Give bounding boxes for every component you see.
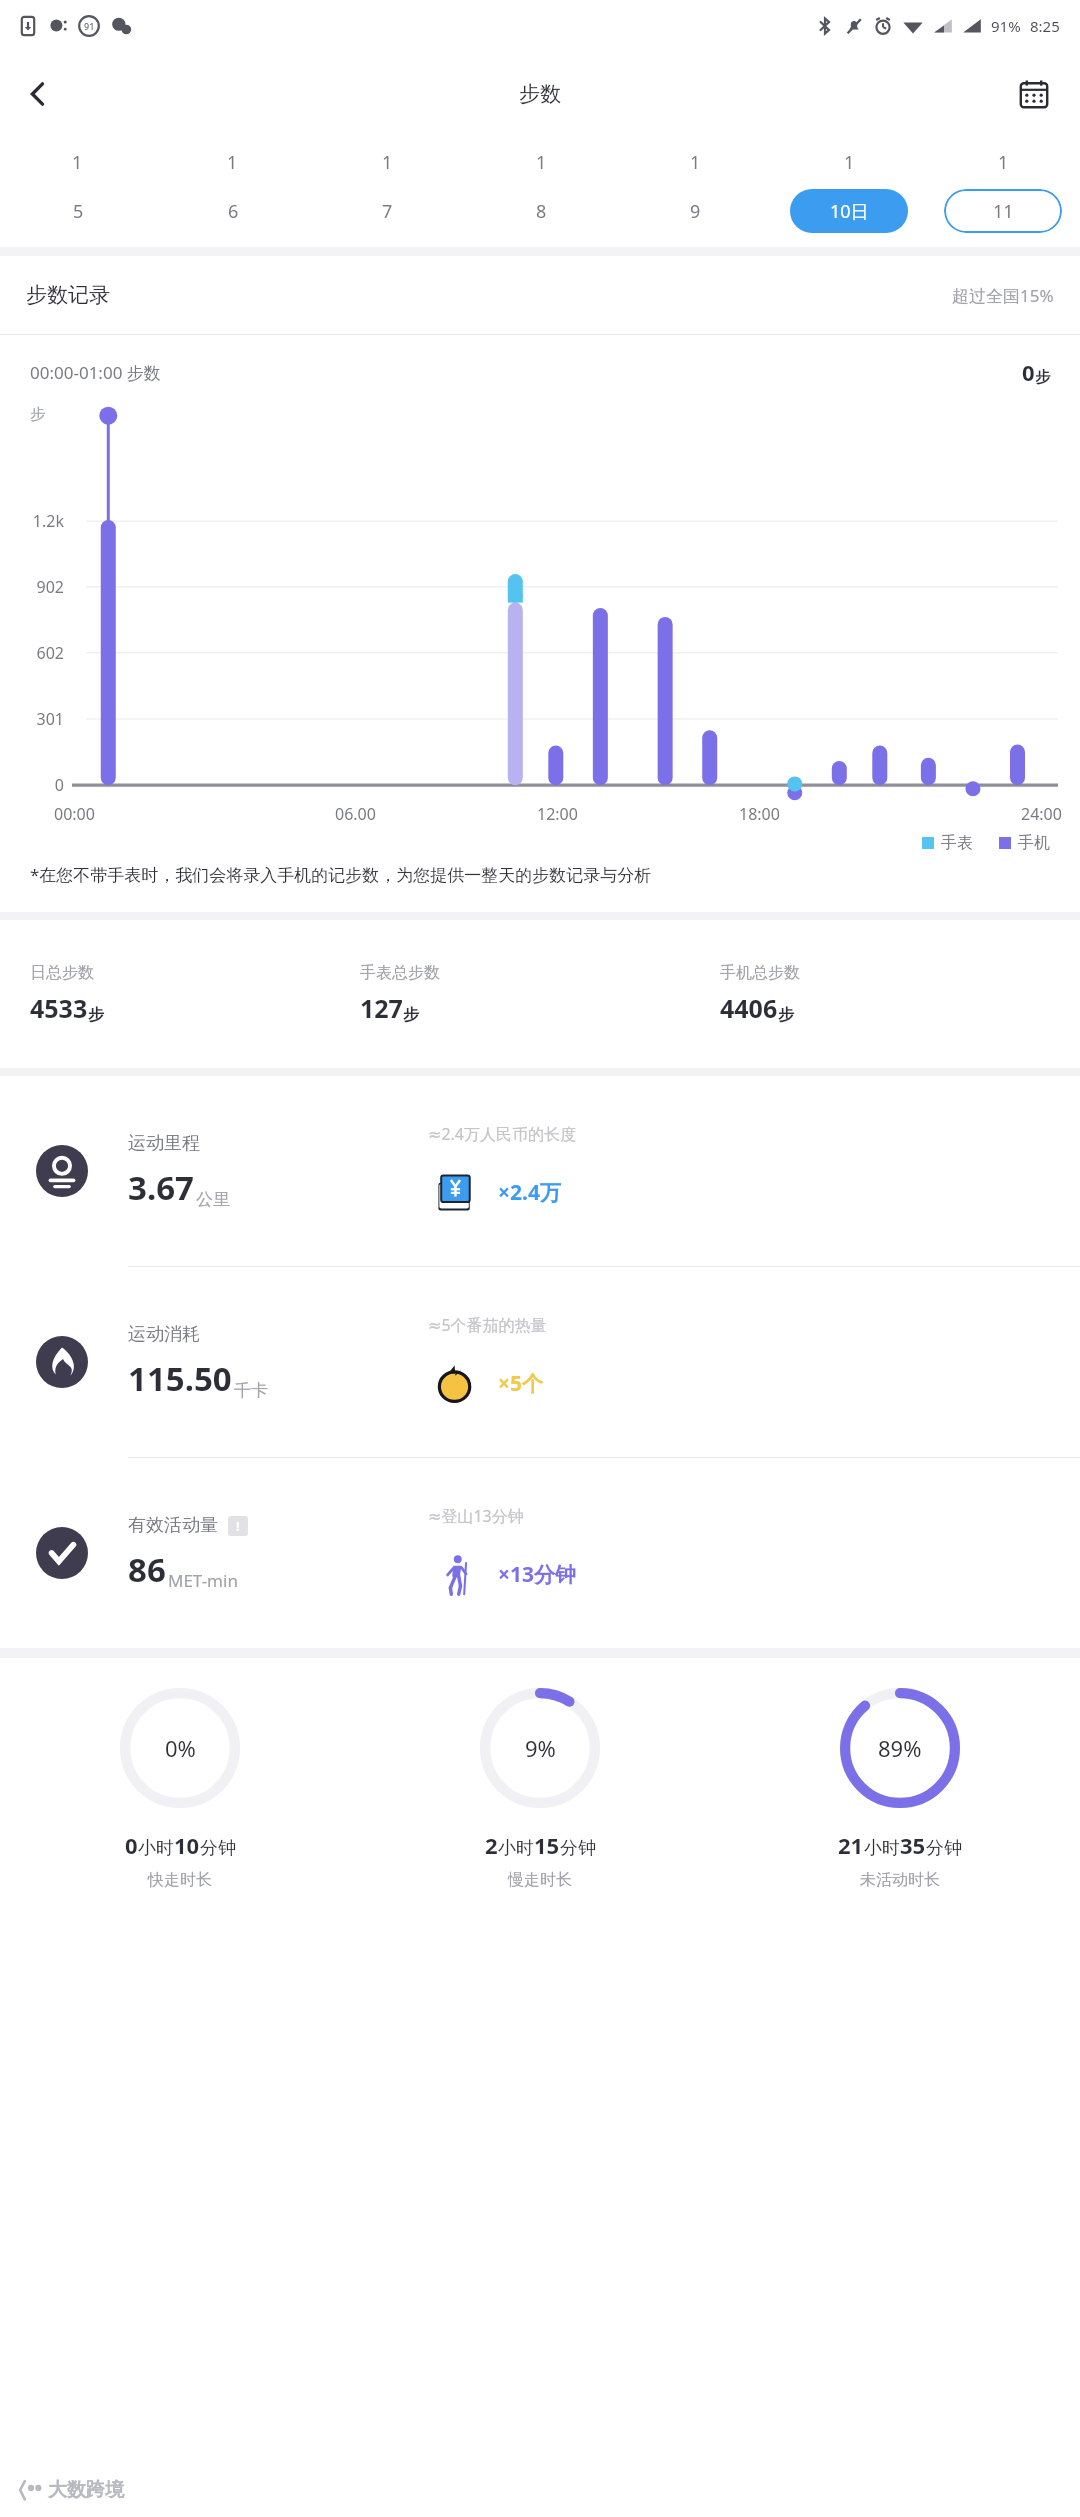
staticText: 00:00 — [54, 803, 95, 825]
button[interactable]: 9% — [360, 1688, 720, 1890]
button[interactable]: 6 — [174, 189, 292, 233]
staticText: 301 — [0, 708, 64, 730]
staticText: *在您不带手表时，我们会将录入手机的记步数，为您提供一整天的步数记录与分析 — [30, 863, 1050, 886]
staticText: 手机总步数 — [720, 963, 800, 983]
staticText: 11 — [993, 199, 1014, 224]
staticText: 00:00-01:00 步数 — [30, 361, 161, 384]
staticText: 1 — [536, 150, 547, 175]
button[interactable]: 0% — [0, 1688, 360, 1890]
staticText: 3.67 — [128, 1165, 194, 1210]
staticText: 0 — [0, 774, 64, 796]
staticText: 6 — [228, 199, 239, 224]
staticText: 127 — [360, 991, 403, 1025]
staticText: 运动消耗 — [128, 1323, 200, 1346]
staticText: 步 — [778, 1005, 794, 1025]
staticText: 小时 — [864, 1837, 900, 1860]
staticText: 步 — [403, 1005, 419, 1025]
staticText: 日总步数 — [30, 963, 94, 983]
button[interactable]: 8 — [482, 189, 600, 233]
button[interactable]: 有效活动量 — [0, 1458, 1080, 1648]
staticText: 分钟 — [926, 1837, 962, 1860]
staticText: 1 — [72, 150, 83, 175]
staticText: 手机 — [1018, 833, 1050, 853]
staticText: 8 — [536, 199, 547, 224]
button[interactable]: 运动里程 — [0, 1076, 1080, 1266]
staticText: 15 — [534, 1830, 560, 1860]
staticText: 步 — [1035, 368, 1050, 387]
staticText: 21 — [838, 1830, 864, 1860]
button[interactable]: 89% — [720, 1688, 1080, 1890]
staticText: 有效活动量 — [128, 1514, 218, 1537]
button[interactable]: 运动消耗 — [0, 1267, 1080, 1457]
staticText: 0 — [1022, 357, 1035, 387]
staticText: 公里 — [196, 1189, 230, 1210]
staticText: 10 — [174, 1830, 200, 1860]
staticText: ! — [236, 1517, 240, 1535]
staticText: 91 — [84, 20, 95, 32]
staticText: 1 — [382, 150, 393, 175]
staticText: 小时 — [498, 1837, 534, 1860]
button[interactable]: Calendar — [1006, 66, 1062, 122]
staticText: 超过全国15% — [952, 284, 1054, 307]
staticText: 未活动时长 — [860, 1870, 940, 1890]
staticText: ≈2.4万人民币的长度 — [428, 1123, 576, 1145]
staticText: 千卡 — [234, 1380, 268, 1401]
staticText: ≈5个番茄的热量 — [428, 1314, 547, 1336]
button[interactable]: 11 — [944, 189, 1062, 233]
staticText: 运动里程 — [128, 1132, 200, 1155]
button[interactable]: 5 — [19, 189, 137, 233]
staticText: 步数 — [519, 81, 561, 107]
staticText: ×5个 — [498, 1369, 544, 1398]
staticText: 06.00 — [335, 803, 376, 825]
button[interactable]: 9 — [636, 189, 754, 233]
staticText: 分钟 — [560, 1837, 596, 1860]
staticText: 分钟 — [200, 1837, 236, 1860]
staticText: 9% — [525, 1733, 556, 1763]
staticText: 0 — [125, 1830, 138, 1860]
staticText: 大数跨境 — [48, 2478, 124, 2502]
staticText: 快走时长 — [148, 1870, 212, 1890]
button[interactable]: 10日 — [790, 189, 908, 233]
staticText: 手表总步数 — [360, 963, 440, 983]
staticText: 小时 — [138, 1837, 174, 1860]
staticText: 86 — [128, 1547, 166, 1592]
staticText: 4406 — [720, 991, 778, 1025]
staticText: 1 — [844, 150, 855, 175]
staticText: 7 — [382, 199, 393, 224]
staticText: 2 — [485, 1830, 498, 1860]
staticText: 115.50 — [128, 1356, 232, 1401]
staticText: 24:00 — [1021, 803, 1062, 825]
staticText: 89% — [878, 1733, 922, 1763]
staticText: ×13分钟 — [498, 1560, 577, 1589]
staticText: 12:00 — [537, 803, 578, 825]
staticText: 步 — [30, 405, 45, 424]
staticText: 慢走时长 — [508, 1870, 572, 1890]
staticText: 4533 — [30, 991, 88, 1025]
staticText: 0% — [165, 1733, 196, 1763]
staticText: 8:25 — [1030, 16, 1060, 36]
staticText: 602 — [0, 642, 64, 664]
staticText: ≈登山13分钟 — [428, 1505, 524, 1527]
button[interactable]: 7 — [328, 189, 446, 233]
staticText: 1 — [690, 150, 701, 175]
staticText: 步 — [88, 1005, 104, 1025]
staticText: 1 — [227, 150, 238, 175]
staticText: 手表 — [941, 833, 973, 853]
staticText: ×2.4万 — [498, 1178, 561, 1207]
staticText: 35 — [900, 1830, 926, 1860]
staticText: 10日 — [830, 199, 869, 224]
staticText: 9 — [690, 199, 701, 224]
button[interactable]: Back — [10, 66, 66, 122]
staticText: 18:00 — [739, 803, 780, 825]
staticText: 步数记录 — [26, 282, 110, 308]
staticText: 1 — [998, 150, 1009, 175]
staticText: 1.2k — [0, 510, 64, 532]
staticText: MET-min — [168, 1569, 238, 1592]
staticText: 902 — [0, 576, 64, 598]
staticText: 5 — [73, 199, 84, 224]
staticText: 91% — [991, 16, 1021, 36]
